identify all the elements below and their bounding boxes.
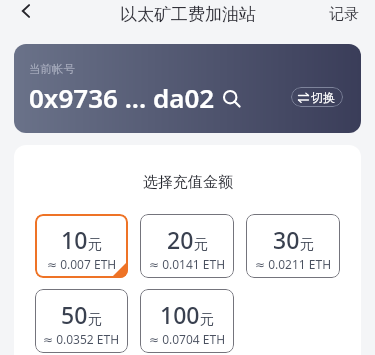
staticText: ≈ 0.007 ETH bbox=[47, 256, 117, 272]
button[interactable]: 50 bbox=[35, 289, 128, 353]
button[interactable]: 当前帐号 bbox=[14, 44, 361, 133]
staticText: 记录 bbox=[329, 5, 359, 24]
staticText: 元 bbox=[88, 236, 102, 254]
button[interactable]: 10 bbox=[35, 214, 128, 278]
button[interactable]: Back bbox=[9, 0, 43, 26]
staticText: 0x9736 ... da02 bbox=[29, 80, 215, 115]
staticText: 元 bbox=[200, 311, 214, 329]
staticText: 20 bbox=[167, 224, 194, 255]
staticText: 元 bbox=[88, 311, 102, 329]
staticText: 30 bbox=[273, 224, 300, 255]
staticText: 元 bbox=[194, 236, 208, 254]
staticText: 50 bbox=[61, 299, 88, 330]
staticText: ≈ 0.0704 ETH bbox=[149, 331, 226, 347]
staticText: 10 bbox=[61, 224, 88, 255]
button[interactable]: Search bbox=[222, 89, 242, 109]
button[interactable]: 记录 bbox=[321, 0, 367, 29]
staticText: ≈ 0.0141 ETH bbox=[149, 256, 226, 272]
staticText: 当前帐号 bbox=[29, 62, 75, 76]
button[interactable]: 100 bbox=[140, 289, 234, 353]
button[interactable]: 30 bbox=[246, 214, 340, 278]
staticText: ≈ 0.0211 ETH bbox=[255, 256, 332, 272]
staticText: 选择充值金额 bbox=[143, 173, 233, 192]
staticText: 100 bbox=[160, 299, 200, 330]
button[interactable]: 切换 bbox=[291, 87, 343, 107]
button[interactable]: 20 bbox=[140, 214, 234, 278]
staticText: ≈ 0.0352 ETH bbox=[43, 331, 120, 347]
staticText: 元 bbox=[300, 236, 314, 254]
staticText: 以太矿工费加油站 bbox=[120, 4, 256, 25]
staticText: 切换 bbox=[311, 90, 335, 105]
